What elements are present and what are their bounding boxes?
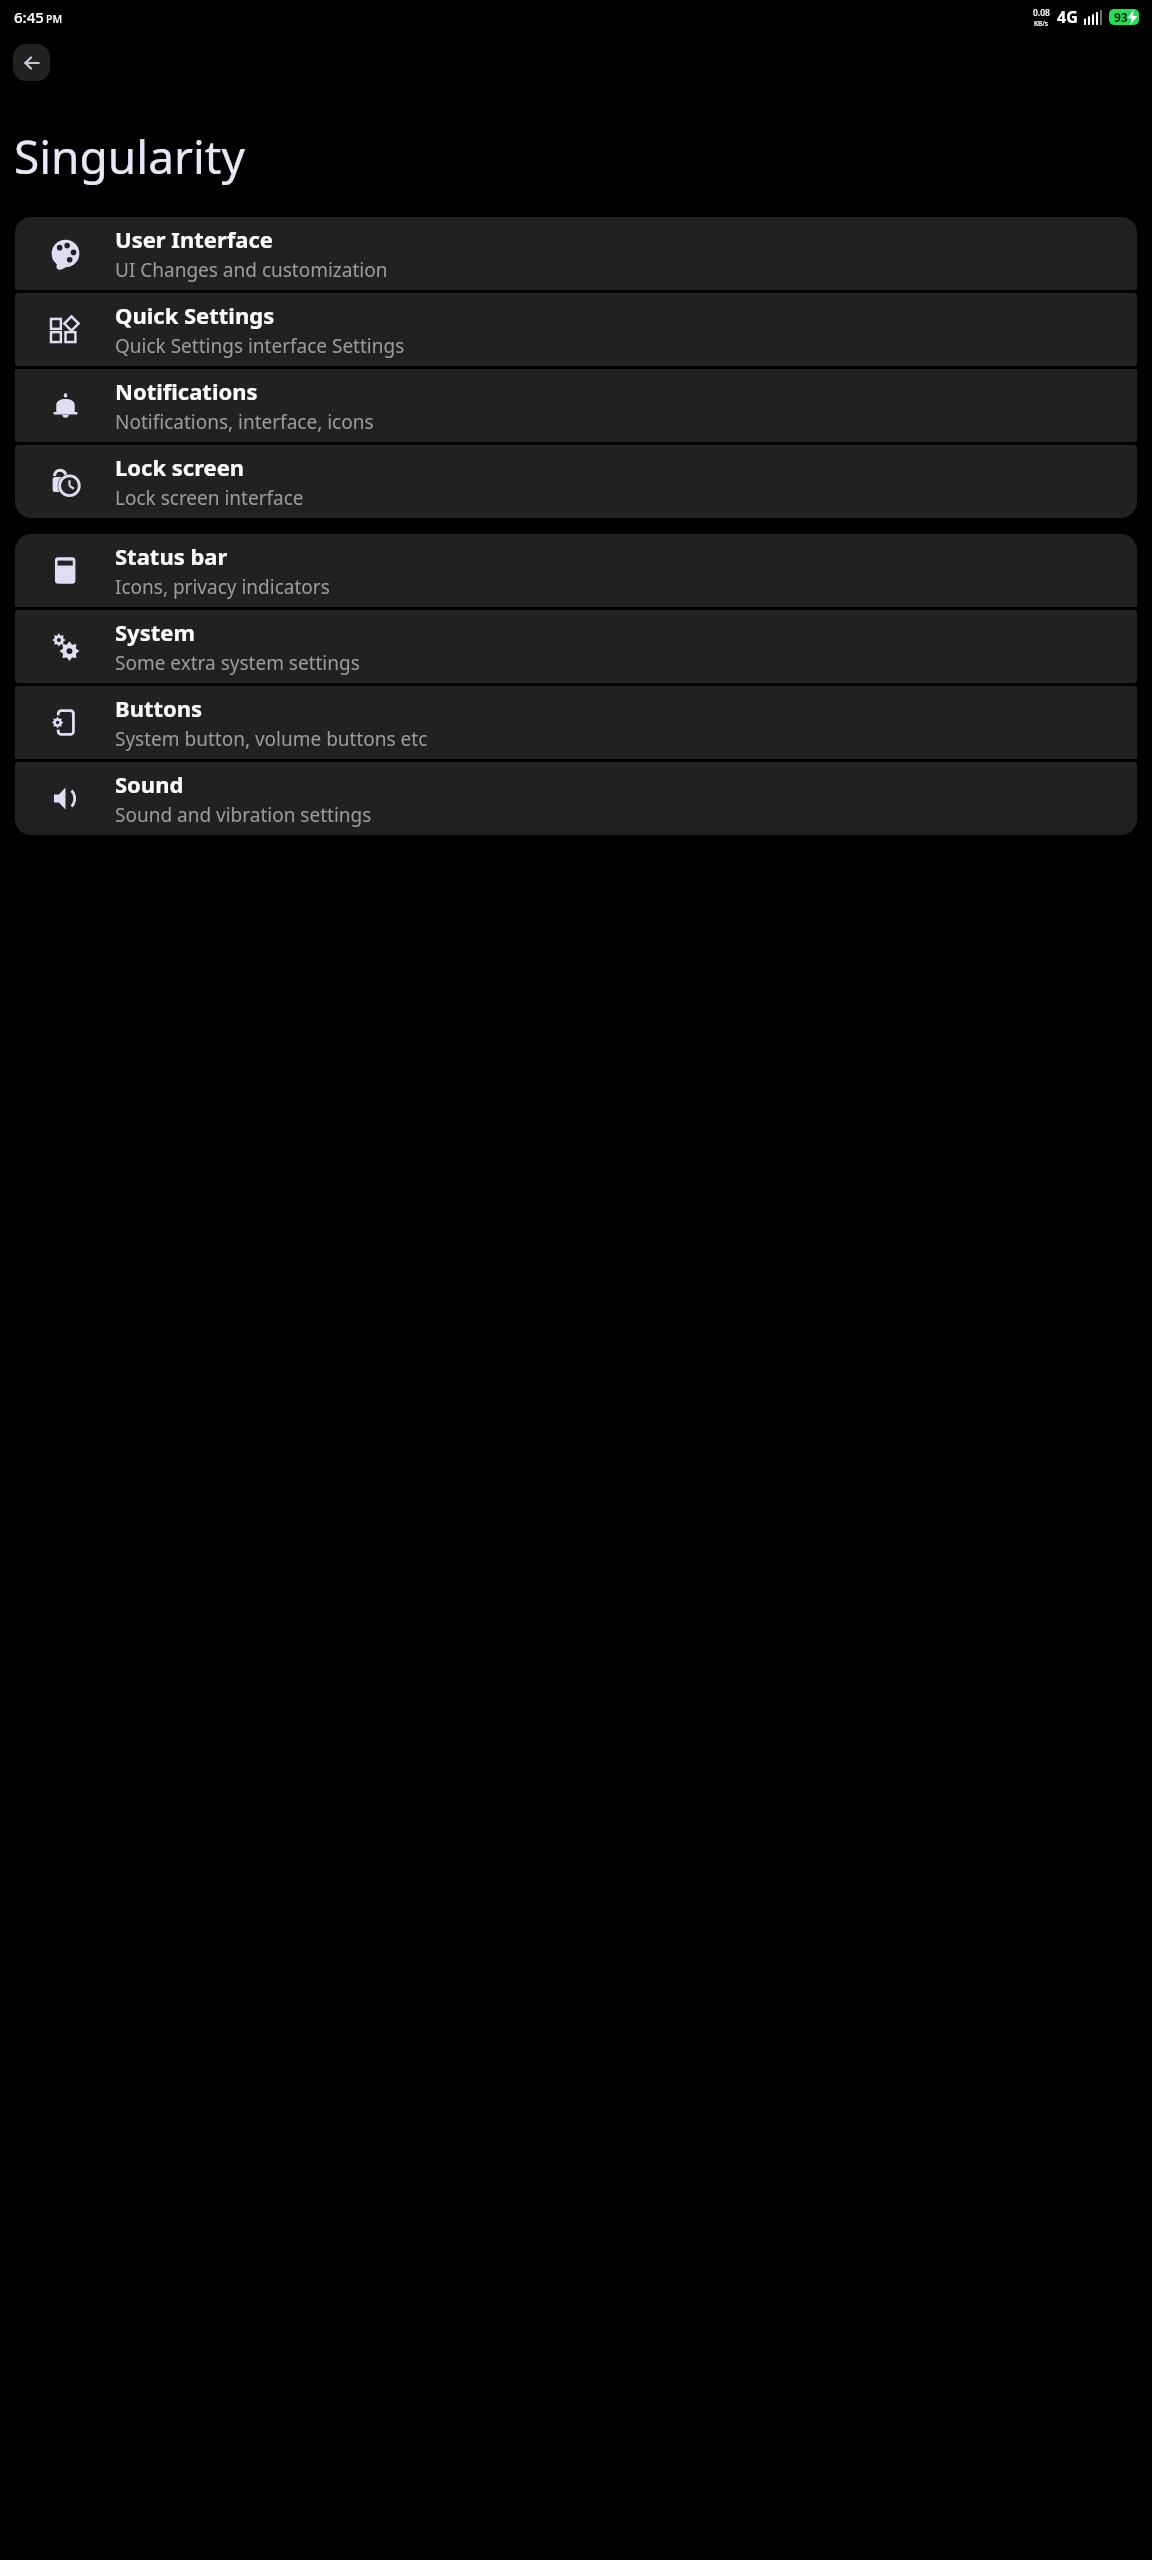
- staticText: Sound: [115, 769, 184, 799]
- staticText: Sound and vibration settings: [115, 802, 372, 828]
- staticText: Some extra system settings: [115, 650, 360, 676]
- staticText: 6:45: [14, 7, 44, 27]
- button[interactable]: Buttons: [15, 686, 1137, 759]
- button[interactable]: Back: [13, 44, 50, 81]
- staticText: 93: [1114, 9, 1128, 25]
- staticText: Singularity: [14, 125, 245, 188]
- staticText: Buttons: [115, 693, 203, 723]
- staticText: User Interface: [115, 224, 273, 254]
- button[interactable]: Status bar: [15, 534, 1137, 607]
- button[interactable]: System: [15, 610, 1137, 683]
- staticText: Quick Settings: [115, 300, 275, 330]
- staticText: 4G: [1057, 6, 1078, 28]
- staticText: Icons, privacy indicators: [115, 574, 330, 600]
- staticText: Notifications: [115, 376, 258, 406]
- button[interactable]: Quick Settings: [15, 293, 1137, 366]
- button[interactable]: Lock screen: [15, 445, 1137, 518]
- button[interactable]: Sound: [15, 762, 1137, 835]
- staticText: Notifications, interface, icons: [115, 409, 374, 435]
- staticText: KB/s: [1034, 19, 1049, 28]
- staticText: 0.08: [1033, 7, 1050, 19]
- staticText: System: [115, 617, 195, 647]
- staticText: Lock screen: [115, 452, 245, 482]
- button[interactable]: User Interface: [15, 217, 1137, 290]
- staticText: UI Changes and customization: [115, 257, 388, 283]
- button[interactable]: Notifications: [15, 369, 1137, 442]
- staticText: Lock screen interface: [115, 485, 304, 511]
- staticText: System button, volume buttons etc: [115, 726, 428, 752]
- staticText: Status bar: [115, 541, 228, 571]
- staticText: PM: [46, 12, 63, 26]
- staticText: Quick Settings interface Settings: [115, 333, 405, 359]
